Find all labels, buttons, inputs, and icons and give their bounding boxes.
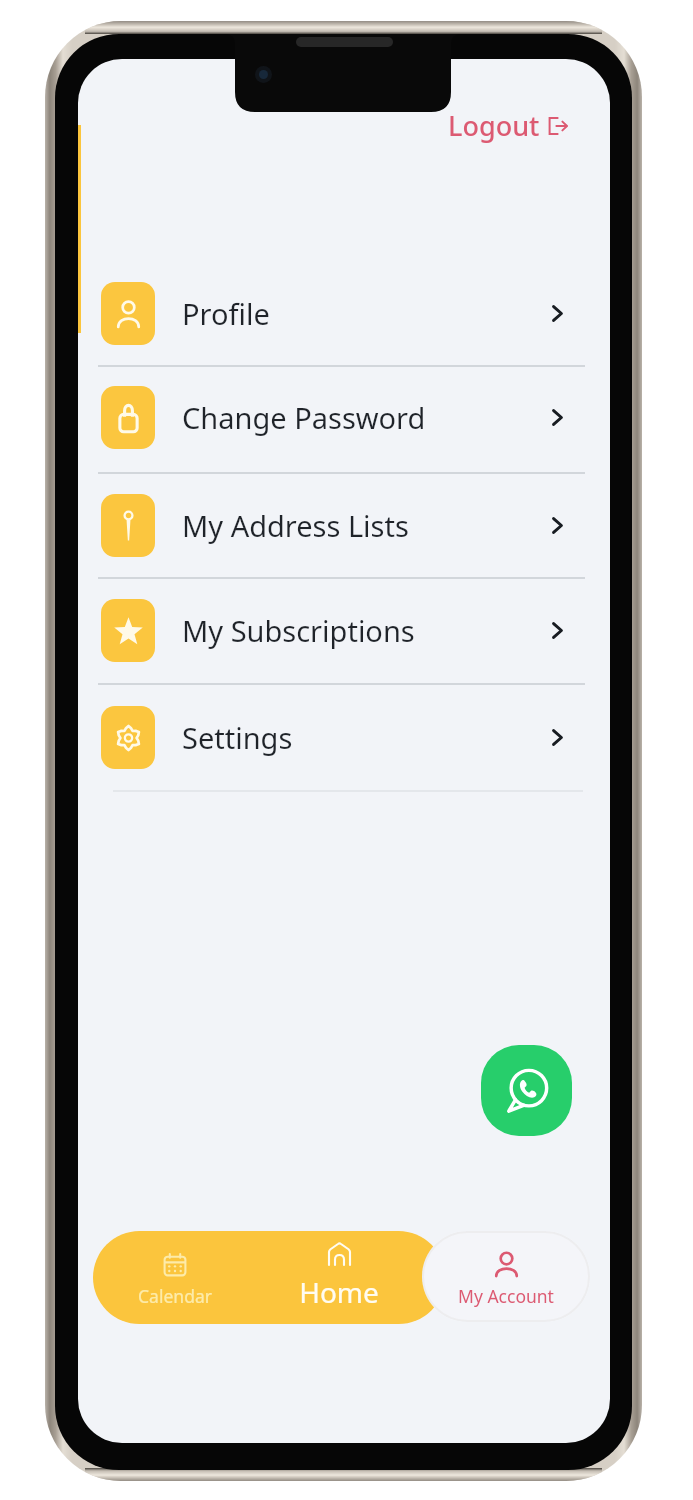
button[interactable]: My Account [458,1251,554,1308]
button[interactable]: My Address Lists [78,472,610,578]
staticText: Calendar [138,1284,212,1308]
staticText: My Account [458,1284,554,1308]
staticText: My Subscriptions [182,611,415,650]
button[interactable]: Settings [78,684,610,790]
staticText: Profile [182,294,270,333]
button[interactable]: Profile [78,260,610,366]
button[interactable]: Change Password [78,364,610,470]
button[interactable]: Logout [440,101,576,150]
button[interactable]: Home [299,1242,379,1311]
staticText: Logout [448,107,540,144]
button[interactable]: My Subscriptions [78,577,610,683]
staticText: Change Password [182,398,426,437]
staticText: My Address Lists [182,506,409,545]
staticText: Settings [182,718,293,757]
staticText: Home [299,1273,379,1311]
button[interactable]: My Account [422,1231,590,1322]
button[interactable]: Chat on WhatsApp [481,1045,572,1136]
button[interactable]: Calendar [138,1252,212,1308]
